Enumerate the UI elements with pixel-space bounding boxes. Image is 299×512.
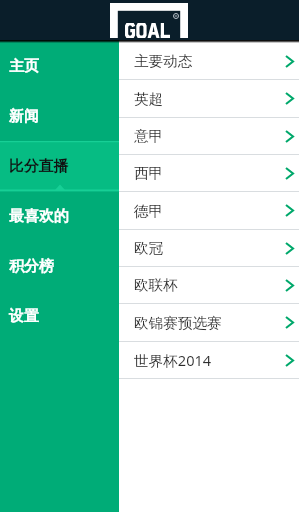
staticText: 欧锦赛预选赛 (134, 314, 222, 332)
staticText: 最喜欢的 (9, 207, 69, 226)
button[interactable]: 主页 (0, 41, 119, 91)
staticText: 主页 (9, 57, 39, 76)
staticText: 英超 (134, 90, 164, 108)
staticText: 设置 (9, 307, 39, 326)
staticText: 西甲 (134, 164, 164, 182)
button[interactable]: 英超 (119, 80, 299, 118)
staticText: 欧联杯 (134, 276, 178, 294)
button[interactable]: 世界杯2014 (119, 342, 299, 379)
button[interactable]: 积分榜 (0, 241, 119, 291)
button[interactable]: 比分直播 (0, 141, 119, 191)
button[interactable]: 欧锦赛预选赛 (119, 304, 299, 342)
staticText: 比分直播 (9, 157, 69, 176)
staticText: 欧冠 (134, 239, 164, 257)
button[interactable]: 设置 (0, 291, 119, 341)
staticText: 德甲 (134, 202, 164, 220)
button[interactable]: 最喜欢的 (0, 191, 119, 241)
button[interactable]: 欧联杯 (119, 267, 299, 304)
button[interactable]: 主要动态 (119, 43, 299, 80)
button[interactable]: 意甲 (119, 118, 299, 155)
staticText: 主要动态 (134, 52, 193, 70)
staticText: 积分榜 (9, 257, 54, 276)
button[interactable]: 德甲 (119, 192, 299, 230)
staticText: 新闻 (9, 107, 39, 126)
button[interactable]: 西甲 (119, 155, 299, 192)
button[interactable]: 欧冠 (119, 230, 299, 267)
staticText: 意甲 (134, 127, 164, 145)
button[interactable]: 新闻 (0, 91, 119, 141)
staticText: 世界杯2014 (134, 350, 212, 370)
